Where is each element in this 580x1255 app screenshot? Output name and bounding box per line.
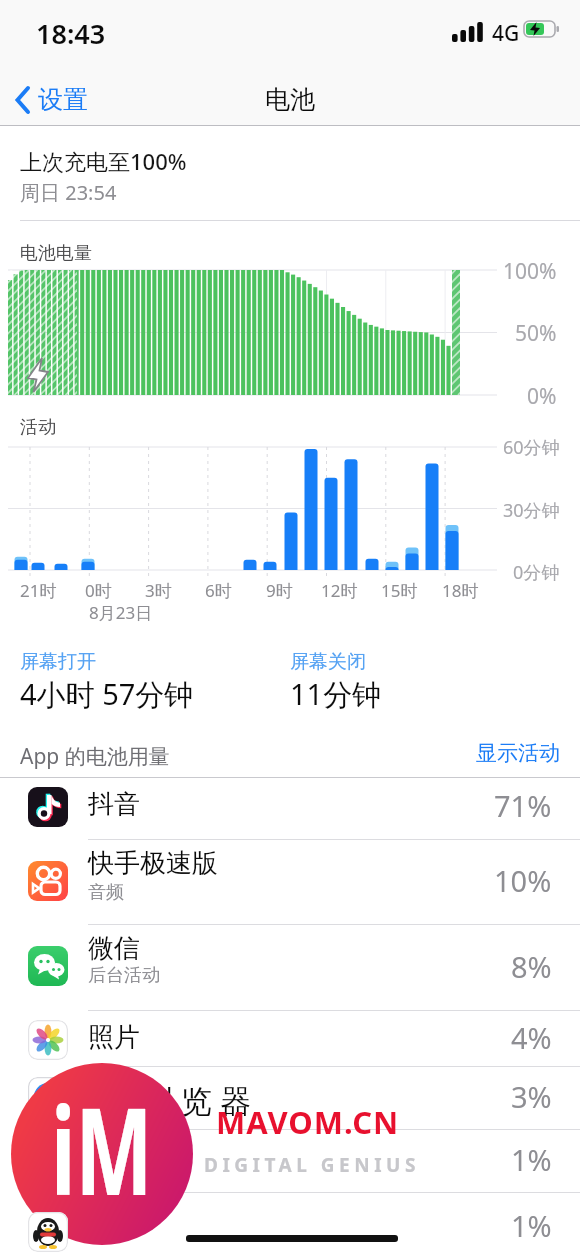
button[interactable] xyxy=(0,1066,580,1129)
staticText: 6时 xyxy=(205,579,232,602)
staticText: 8月23日 xyxy=(89,601,153,624)
staticText: 8% xyxy=(511,947,552,986)
staticText: 照片 xyxy=(88,1021,140,1054)
staticText: App 的电池用量 xyxy=(20,742,170,771)
staticText: 周日 23:54 xyxy=(20,179,117,206)
staticText: 上次充电至100% xyxy=(20,146,187,176)
button[interactable] xyxy=(0,924,580,1010)
staticText: 4G xyxy=(492,19,520,48)
staticText: 3时 xyxy=(145,579,172,602)
staticText: 9时 xyxy=(266,579,293,602)
staticText: 微信 xyxy=(88,932,140,965)
staticText: 快手极速版 xyxy=(88,847,218,880)
staticText: 电池电量 xyxy=(20,242,92,265)
staticText: 屏幕关闭 xyxy=(290,650,366,674)
staticText: 后台活动 xyxy=(88,964,160,987)
staticText: 3% xyxy=(511,1077,552,1116)
staticText: MAVOM.CN xyxy=(216,1101,400,1143)
staticText: 活动 xyxy=(20,416,56,439)
button[interactable] xyxy=(0,839,580,924)
staticText: 0% xyxy=(527,382,557,411)
staticText: 15时 xyxy=(381,579,418,602)
staticText: iM xyxy=(51,1067,153,1230)
staticText: DIGITAL GENIUS xyxy=(204,1152,420,1178)
staticText: 71% xyxy=(494,786,552,825)
button[interactable] xyxy=(0,1129,580,1192)
staticText: 0分钟 xyxy=(513,560,560,585)
button[interactable] xyxy=(0,1010,580,1066)
staticText: 18时 xyxy=(442,579,479,602)
button[interactable] xyxy=(0,777,580,839)
staticText: 屏幕打开 xyxy=(20,650,96,674)
staticText: 4小时 57分钟 xyxy=(20,674,194,714)
staticText: 12时 xyxy=(321,579,358,602)
staticText: 30分钟 xyxy=(503,498,560,523)
staticText: 音频 xyxy=(88,881,124,904)
staticText: 1% xyxy=(511,1206,552,1245)
staticText: 抖音 xyxy=(88,788,140,821)
button[interactable] xyxy=(0,1192,580,1255)
button[interactable]: 设置 xyxy=(38,84,88,115)
staticText: 显示活动 xyxy=(476,740,560,766)
staticText: 18:43 xyxy=(36,15,106,52)
staticText: 1% xyxy=(511,1140,552,1179)
button[interactable] xyxy=(16,87,30,113)
staticText: 电池 xyxy=(265,84,315,115)
button[interactable]: 显示活动 xyxy=(360,740,560,766)
staticText: 60分钟 xyxy=(503,435,560,460)
staticText: 浏览器 xyxy=(138,1082,255,1121)
staticText: 11分钟 xyxy=(290,674,382,714)
staticText: 10% xyxy=(494,861,552,900)
staticText: 设置 xyxy=(38,84,88,115)
staticText: 50% xyxy=(515,319,557,348)
staticText: 0时 xyxy=(85,579,112,602)
staticText: 100% xyxy=(503,257,557,286)
button[interactable]: 屏幕打开 xyxy=(20,650,96,674)
staticText: 4% xyxy=(511,1018,552,1057)
staticText: 21时 xyxy=(20,579,57,602)
